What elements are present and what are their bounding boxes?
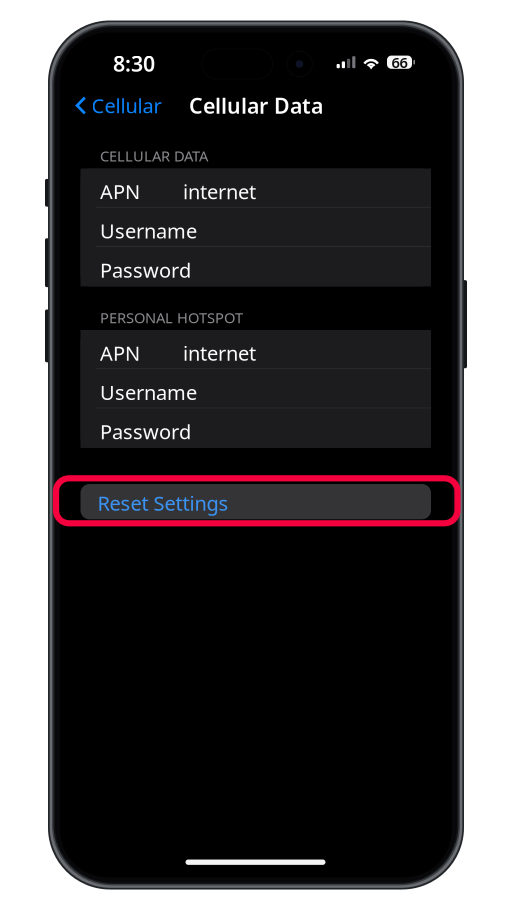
staticText: CELLULAR DATA [100,146,208,166]
staticText: 66 [391,52,407,72]
staticText: Username [100,379,197,405]
staticText: APN [100,340,140,366]
staticText: internet [183,340,256,366]
button[interactable]: Reset Settings [80,484,431,519]
staticText: 8:30 [113,49,155,78]
staticText: Password [100,418,191,445]
staticText: PERSONAL HOTSPOT [100,308,243,327]
staticText: Cellular [91,92,161,119]
button[interactable]: Password [80,409,431,448]
staticText: APN [100,178,140,205]
button[interactable]: Username [80,369,431,409]
staticText: Password [100,257,191,283]
button[interactable]: Username [80,208,431,247]
staticText: Username [100,217,197,244]
staticText: internet [183,178,256,205]
button[interactable]: Cellular [61,86,173,124]
button[interactable]: Password [80,247,431,286]
button[interactable]: APN [80,330,431,369]
staticText: Reset Settings [97,490,228,516]
button[interactable]: APN [80,168,431,208]
staticText: Cellular Data [189,91,323,120]
